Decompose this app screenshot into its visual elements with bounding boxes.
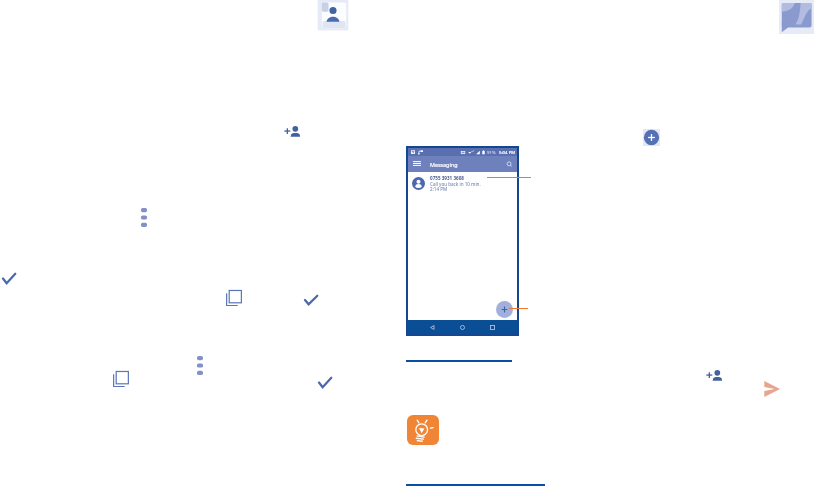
staticText: 2:14 PM: [430, 186, 448, 192]
staticText: Call you back in 10 min.: [430, 181, 481, 187]
button[interactable]: Search: [506, 161, 513, 168]
button[interactable]: 0755 3931 3608: [408, 172, 517, 202]
button[interactable]: Back: [429, 324, 436, 331]
button[interactable]: More options: [141, 208, 147, 227]
button[interactable]: New message: [496, 301, 513, 318]
button[interactable]: Add contact: [284, 126, 301, 137]
staticText: 0755 3931 3608: [430, 175, 464, 181]
button[interactable]: Copy: [226, 290, 242, 306]
staticText: 91%: [487, 149, 496, 155]
button[interactable]: New: [643, 129, 660, 146]
staticText: Messaging: [430, 161, 458, 168]
button[interactable]: Copy: [113, 371, 129, 387]
button[interactable]: Contacts: [316, 0, 350, 31]
button[interactable]: Messaging: [779, 0, 814, 34]
button[interactable]: Confirm: [2, 273, 16, 284]
button[interactable]: Add contact: [706, 370, 723, 381]
button[interactable]: Confirm: [304, 295, 318, 305]
button[interactable]: Menu: [413, 161, 421, 166]
button[interactable]: Recent apps: [489, 324, 496, 331]
button[interactable]: Send: [764, 381, 780, 397]
button[interactable]: Home: [459, 324, 466, 331]
button[interactable]: More options: [197, 356, 203, 375]
button[interactable]: Confirm: [318, 377, 332, 388]
button[interactable]: Tip: [407, 415, 439, 445]
staticText: 5:04 PM: [499, 149, 516, 155]
